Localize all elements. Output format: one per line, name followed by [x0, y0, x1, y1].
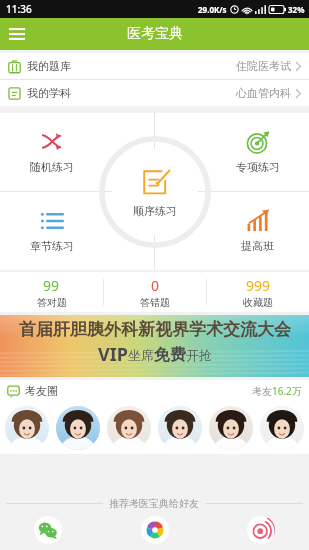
button[interactable]: 99 — [0, 272, 103, 312]
button[interactable]: 首届肝胆胰外科新视界学术交流大会 — [0, 315, 309, 377]
staticText: 坐席 — [128, 347, 154, 363]
button[interactable]: 考友圈 — [0, 380, 309, 402]
staticText: 心血管内科 — [236, 86, 291, 100]
button[interactable]: Friend 2 — [56, 406, 100, 450]
staticText: VIP — [98, 342, 128, 367]
staticText: 0 — [151, 276, 160, 295]
button[interactable]: 专项练习 — [206, 113, 309, 191]
staticText: 11:36 — [6, 2, 32, 16]
button[interactable]: Menu — [0, 18, 34, 50]
staticText: 99 — [43, 276, 60, 295]
button[interactable]: 我的题库 — [0, 53, 309, 79]
staticText: 考友 — [252, 385, 272, 398]
button[interactable]: Qzone — [141, 516, 169, 544]
staticText: 提高班 — [241, 239, 274, 253]
staticText: 我的题库 — [27, 59, 71, 73]
staticText: 住院医考试 — [236, 59, 291, 73]
staticText: 开抢 — [186, 347, 212, 363]
staticText: 章节练习 — [30, 239, 74, 253]
button[interactable]: WeChat — [34, 516, 62, 544]
staticText: 免费 — [154, 345, 186, 365]
staticText: 收藏题 — [243, 296, 273, 309]
staticText: 随机练习 — [30, 160, 74, 174]
staticText: 32% — [288, 4, 305, 15]
button[interactable]: 999 — [207, 272, 309, 312]
staticText: 专项练习 — [236, 160, 280, 174]
staticText: 答错题 — [140, 296, 170, 309]
staticText: 我的学科 — [27, 86, 71, 100]
staticText: 推荐考医宝典给好友 — [109, 497, 199, 510]
button[interactable]: 我的学科 — [0, 80, 309, 106]
button[interactable]: 章节练习 — [0, 191, 103, 270]
staticText: 考友圈 — [25, 384, 58, 398]
button[interactable]: 随机练习 — [0, 113, 103, 191]
staticText: 医考宝典 — [127, 25, 183, 43]
button[interactable]: 提高班 — [206, 191, 309, 270]
button[interactable]: 0 — [104, 272, 206, 312]
staticText: 顺序练习 — [133, 204, 177, 218]
button[interactable]: Friend 3 — [107, 406, 151, 450]
staticText: 16.2万 — [272, 384, 302, 398]
staticText: 首届肝胆胰外科新视界学术交流大会 — [19, 319, 291, 340]
staticText: 答对题 — [37, 296, 67, 309]
button[interactable]: Friend 5 — [209, 406, 253, 450]
button[interactable]: Friend 6 — [260, 406, 304, 450]
button[interactable]: 顺序练习 — [112, 149, 198, 235]
staticText: 29.0K/s — [198, 4, 227, 15]
button[interactable]: Weibo — [247, 516, 275, 544]
staticText: 999 — [246, 276, 271, 295]
button[interactable]: Friend 4 — [158, 406, 202, 450]
button[interactable]: Friend 1 — [5, 406, 49, 450]
